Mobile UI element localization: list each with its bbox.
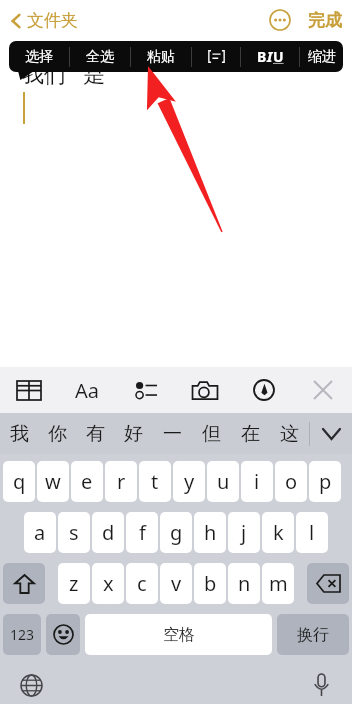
button[interactable]: 选择 (9, 41, 69, 72)
button[interactable]: m (262, 563, 294, 604)
staticText: 我 (10, 422, 29, 446)
staticText: r (117, 468, 126, 495)
staticText: I (267, 47, 273, 66)
staticText: 有 (86, 422, 105, 446)
button[interactable]: t (139, 461, 171, 502)
button[interactable]: 全选 (70, 41, 130, 72)
staticText: b (204, 570, 217, 597)
button[interactable]: q (3, 461, 35, 502)
staticText: 文件夹 (27, 10, 78, 31)
staticText: t (151, 468, 159, 495)
staticText: 你 (48, 422, 67, 446)
staticText: 在 (241, 422, 260, 446)
staticText: y (184, 468, 195, 495)
button[interactable]: Checklist (116, 367, 175, 413)
button[interactable]: b (194, 563, 226, 604)
staticText: j (241, 519, 247, 546)
button[interactable]: Backspace (307, 563, 349, 604)
button[interactable]: w (37, 461, 69, 502)
button[interactable] (192, 41, 240, 72)
button[interactable]: 有 (76, 413, 114, 454)
button[interactable]: Switch keyboard (14, 668, 48, 702)
button[interactable]: 但 (192, 413, 231, 454)
button[interactable]: Markup (234, 367, 293, 413)
staticText: g (170, 519, 183, 546)
button[interactable]: Shift (3, 563, 45, 604)
button[interactable]: k (262, 512, 294, 553)
button[interactable]: 一 (153, 413, 192, 454)
staticText: 完成 (308, 10, 342, 31)
button[interactable]: Camera (175, 367, 234, 413)
button[interactable]: u (207, 461, 239, 502)
staticText: u (217, 468, 230, 495)
button[interactable]: 空格 (85, 614, 272, 655)
button[interactable]: z (58, 563, 90, 604)
button[interactable]: l (296, 512, 328, 553)
button[interactable]: Aa (58, 367, 116, 413)
button[interactable]: 在 (231, 413, 270, 454)
staticText: 好 (124, 422, 143, 446)
button[interactable]: 好 (114, 413, 153, 454)
staticText: s (69, 519, 79, 546)
button[interactable]: More options (266, 6, 294, 34)
button[interactable]: j (228, 512, 260, 553)
staticText: h (204, 519, 217, 546)
staticText: k (273, 519, 284, 546)
staticText: 缩进 (308, 48, 336, 66)
button[interactable]: g (160, 512, 192, 553)
button[interactable]: c (126, 563, 158, 604)
staticText: 换行 (297, 625, 329, 645)
staticText: 我们 是 (22, 58, 106, 88)
button[interactable]: x (92, 563, 124, 604)
staticText: 123 (10, 625, 35, 644)
staticText: q (13, 468, 26, 495)
staticText: B (257, 47, 267, 66)
button[interactable]: Table (0, 367, 58, 413)
staticText: z (69, 570, 79, 597)
button[interactable]: v (160, 563, 192, 604)
staticText: 这 (280, 422, 299, 446)
staticText: e (81, 468, 93, 495)
staticText: i (254, 468, 260, 495)
staticText: c (137, 570, 147, 597)
button[interactable]: Emoji (46, 614, 80, 655)
button[interactable]: B (241, 41, 299, 72)
staticText: n (238, 570, 251, 597)
button[interactable]: d (92, 512, 124, 553)
staticText: p (319, 468, 332, 495)
button[interactable]: Expand candidates (310, 413, 352, 454)
staticText: l (309, 519, 315, 546)
staticText: Aa (75, 377, 99, 404)
button[interactable]: 完成 (308, 10, 342, 31)
button[interactable]: e (71, 461, 103, 502)
button[interactable]: p (309, 461, 341, 502)
button[interactable]: Close (293, 367, 352, 413)
button[interactable]: 文件夹 (10, 10, 86, 31)
button[interactable]: 粘贴 (131, 41, 191, 72)
button[interactable]: n (228, 563, 260, 604)
staticText: 空格 (163, 625, 195, 645)
button[interactable]: a (24, 512, 56, 553)
staticText: o (285, 468, 298, 495)
button[interactable]: 缩进 (300, 41, 343, 72)
button[interactable]: f (126, 512, 158, 553)
button[interactable]: 我 (0, 413, 38, 454)
button[interactable]: h (194, 512, 226, 553)
staticText: 但 (202, 422, 221, 446)
button[interactable]: 换行 (277, 614, 349, 655)
button[interactable]: o (275, 461, 307, 502)
staticText: d (102, 519, 115, 546)
button[interactable]: r (105, 461, 137, 502)
button[interactable]: y (173, 461, 205, 502)
button[interactable]: 123 (3, 614, 41, 655)
staticText: 全选 (86, 48, 114, 66)
button[interactable]: s (58, 512, 90, 553)
button[interactable]: Dictation (304, 668, 338, 702)
staticText: 一 (163, 422, 182, 446)
staticText: 粘贴 (147, 48, 175, 66)
button[interactable]: i (241, 461, 273, 502)
button[interactable]: 这 (270, 413, 309, 454)
staticText: U (273, 47, 284, 66)
staticText: v (171, 570, 182, 597)
button[interactable]: 你 (38, 413, 76, 454)
